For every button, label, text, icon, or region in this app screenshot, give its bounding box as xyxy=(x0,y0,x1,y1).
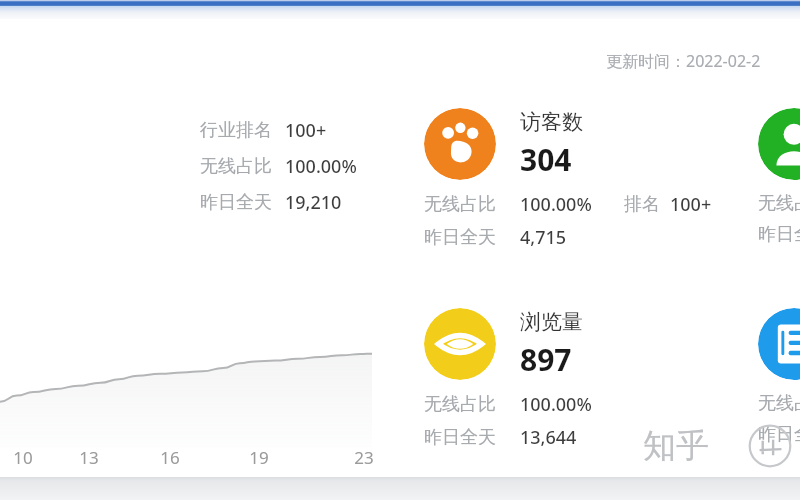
button[interactable]: 行业排名 xyxy=(200,117,327,144)
staticText: 16 xyxy=(156,446,184,469)
staticText: 13 xyxy=(75,446,103,469)
staticText: 无线占比 xyxy=(424,193,496,216)
staticText: 19,210 xyxy=(285,190,342,215)
staticText: 行业排名 xyxy=(200,119,272,142)
staticText: 100+ xyxy=(285,118,327,143)
staticText: 100.00% xyxy=(520,192,592,217)
staticText: 10 xyxy=(9,446,37,469)
staticText: 无线占比 xyxy=(758,192,800,215)
staticText: 访客数 xyxy=(520,109,583,135)
staticText: 无线占比 xyxy=(424,393,496,416)
button[interactable]: 无线占比 xyxy=(200,153,357,180)
staticText: 昨日全天 xyxy=(758,423,800,446)
staticText: 昨日全天 xyxy=(424,426,496,449)
staticText: 897 xyxy=(520,339,572,380)
staticText: 304 xyxy=(520,139,572,180)
button[interactable]: 昨日全天 xyxy=(200,189,342,216)
staticText: 100.00% xyxy=(285,154,357,179)
staticText: 排名 xyxy=(624,193,660,216)
staticText: 4,715 xyxy=(520,225,567,250)
staticText: 无线占比 xyxy=(758,392,800,415)
staticText: 更新时间：2022-02-2 xyxy=(606,50,761,72)
staticText: 13,644 xyxy=(520,425,577,450)
staticText: 昨日全天 xyxy=(200,191,272,214)
staticText: 100.00% xyxy=(520,392,592,417)
staticText: 知乎 xyxy=(643,425,709,467)
staticText: 无线占比 xyxy=(200,155,272,178)
staticText: 浏览量 xyxy=(520,309,583,335)
button[interactable]: 浏览量 xyxy=(424,308,616,450)
staticText: 昨日全天 xyxy=(424,226,496,249)
staticText: 23 xyxy=(350,446,378,469)
button[interactable]: 访客数 xyxy=(424,108,712,250)
button[interactable]: 订单量 xyxy=(758,308,800,446)
staticText: 昨日全天 xyxy=(758,223,800,246)
staticText: 19 xyxy=(245,446,273,469)
button[interactable]: 新增客户 xyxy=(758,108,800,246)
staticText: 100+ xyxy=(670,192,712,217)
button[interactable]: 更新时间：2022-02-2 xyxy=(604,48,763,74)
